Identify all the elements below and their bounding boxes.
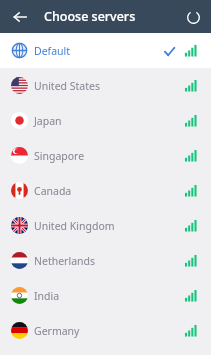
button[interactable]: Back — [8, 5, 32, 29]
button[interactable]: United Kingdom — [0, 208, 211, 243]
staticText: Germany — [34, 324, 80, 338]
staticText: Japan — [34, 114, 62, 128]
button[interactable]: Japan — [0, 103, 211, 138]
button[interactable]: Singapore — [0, 138, 211, 173]
staticText: Default — [34, 44, 71, 58]
staticText: United States — [34, 79, 100, 93]
button[interactable]: Netherlands — [0, 243, 211, 278]
staticText: Canada — [34, 184, 72, 198]
button[interactable]: Refresh — [181, 5, 205, 29]
button[interactable]: Germany — [0, 313, 211, 348]
staticText: Choose servers — [44, 8, 136, 25]
button[interactable]: Canada — [0, 173, 211, 208]
staticText: India — [34, 289, 60, 303]
staticText: United Kingdom — [34, 219, 115, 233]
button[interactable]: India — [0, 278, 211, 313]
button[interactable]: United States — [0, 68, 211, 103]
button[interactable]: Default — [0, 33, 211, 68]
staticText: Singapore — [34, 149, 85, 163]
staticText: Netherlands — [34, 254, 96, 268]
